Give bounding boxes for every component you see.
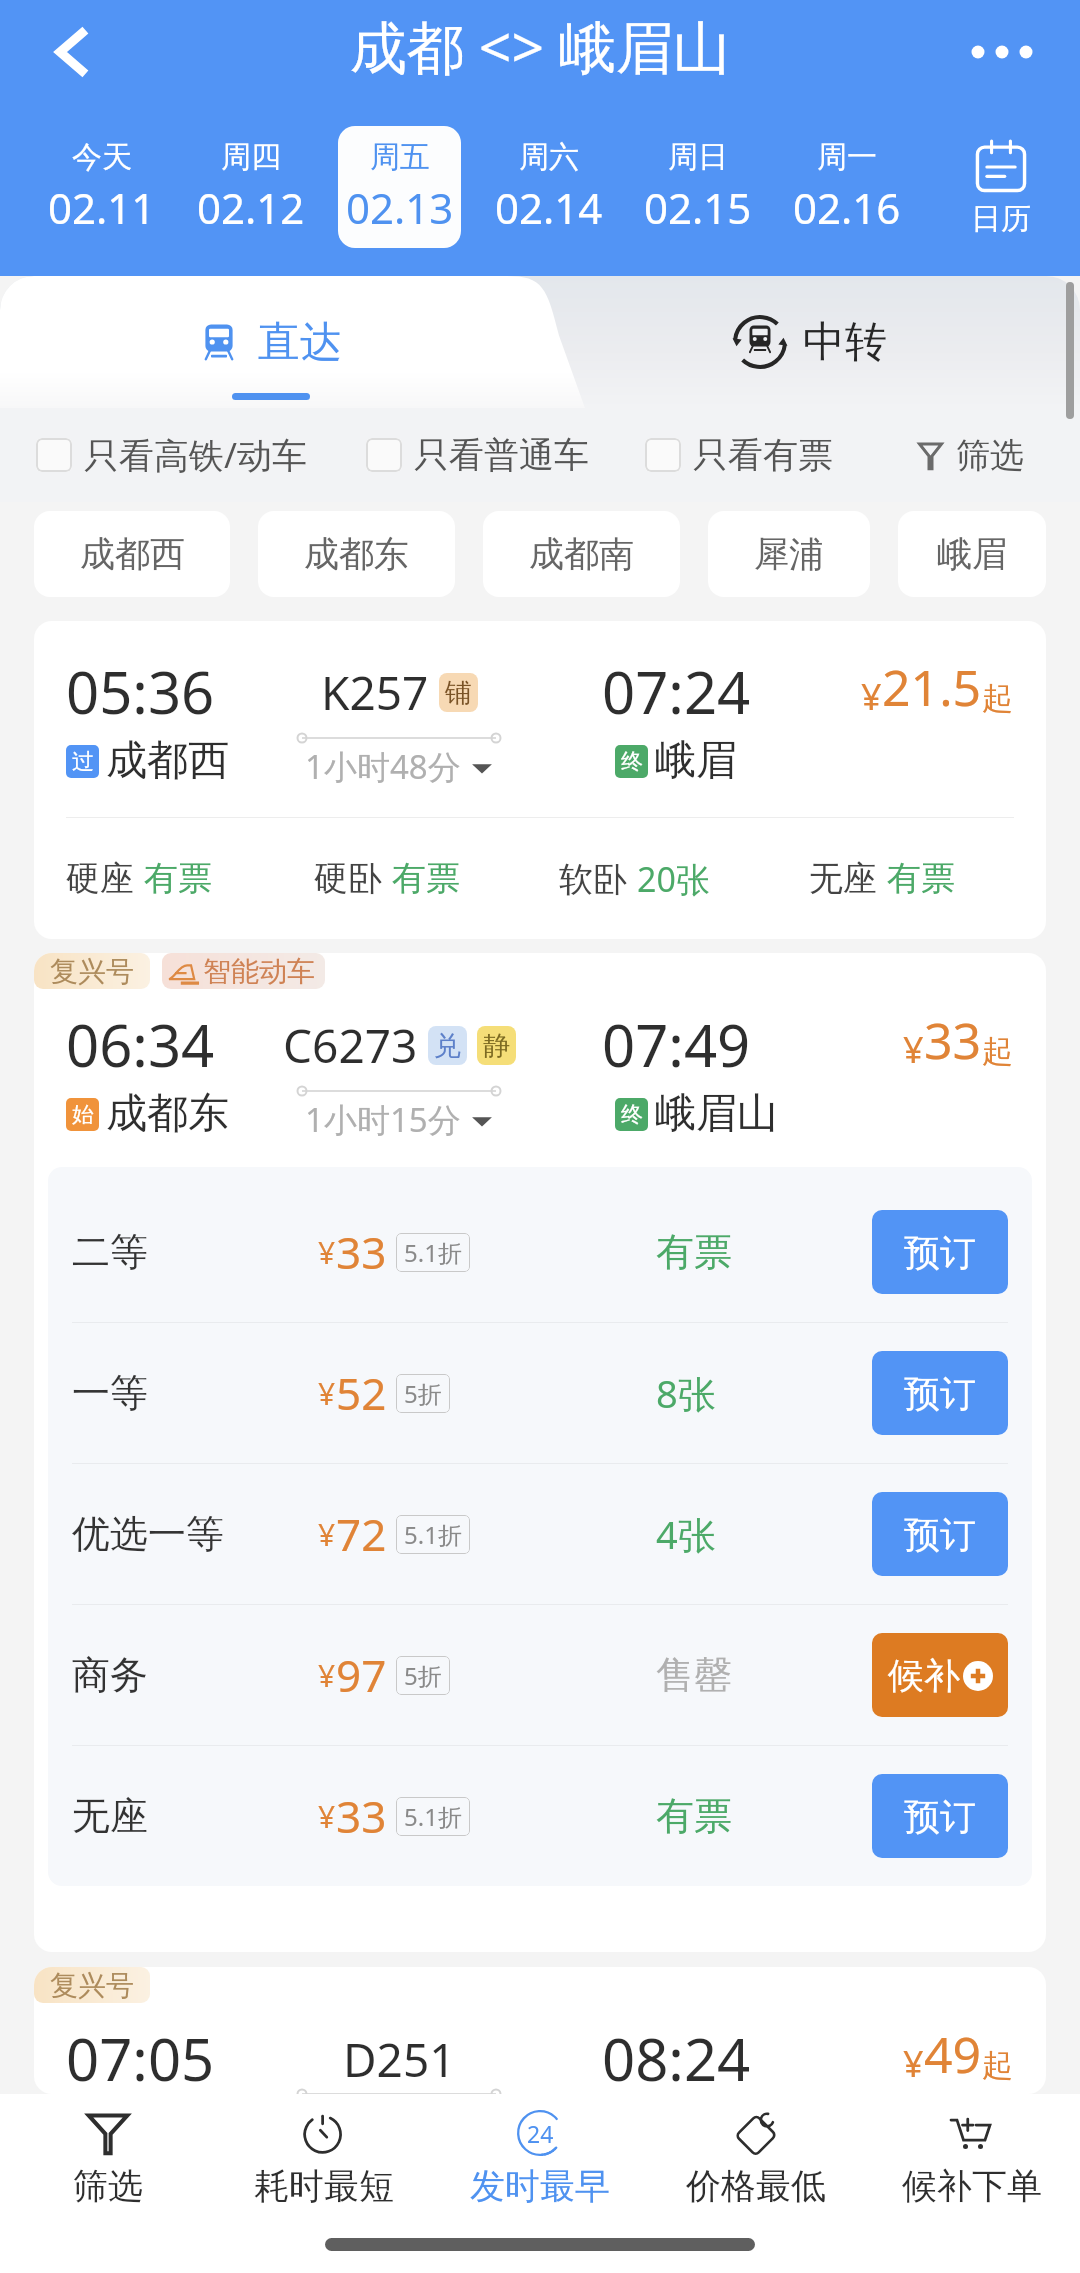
staticText: ¥	[318, 1373, 336, 1414]
staticText: 日历	[971, 200, 1031, 238]
button[interactable]: 24	[432, 2108, 648, 2218]
staticText: 07:49	[602, 1005, 751, 1084]
button[interactable]: 周日	[636, 126, 759, 248]
button[interactable]: 犀浦	[708, 511, 870, 597]
staticText: 复兴号	[50, 1968, 134, 2003]
staticText: 02.13	[346, 179, 454, 236]
staticText: 52	[336, 1363, 387, 1423]
button[interactable]: 预订	[872, 1351, 1008, 1435]
staticText: 成都西	[80, 532, 185, 576]
staticText: 33	[336, 1786, 387, 1846]
staticText: 4张	[656, 1508, 716, 1560]
button[interactable]: 只看普通车	[366, 433, 589, 477]
button[interactable]: 成都西	[34, 511, 230, 597]
button[interactable]: 成都南	[483, 511, 680, 597]
staticText: ¥	[861, 672, 882, 721]
button[interactable]: More options	[962, 12, 1042, 92]
staticText: 优选一等	[72, 1510, 224, 1558]
staticText: ¥	[318, 1796, 336, 1837]
staticText: 成都东	[106, 1088, 229, 1140]
button[interactable]: 预订	[872, 1774, 1008, 1858]
staticText: 预订	[904, 1371, 976, 1416]
button[interactable]: 候补	[872, 1633, 1008, 1717]
staticText: 今天	[72, 138, 132, 176]
staticText: 有票	[144, 857, 212, 900]
button[interactable]: 周六	[487, 126, 610, 248]
button[interactable]: 筛选	[0, 2108, 216, 2218]
button[interactable]: 二等	[48, 1182, 1032, 1322]
staticText: 8张	[656, 1367, 716, 1419]
staticText: 只看有票	[693, 433, 833, 477]
staticText: 价格最低	[686, 2164, 826, 2208]
staticText: 5折	[404, 1659, 442, 1692]
staticText: 预订	[904, 1512, 976, 1557]
staticText: 20张	[637, 856, 710, 902]
button[interactable]: Back	[30, 12, 110, 92]
staticText: 峨眉	[655, 735, 737, 787]
button[interactable]: 今天	[40, 126, 163, 248]
staticText: 08:24	[602, 2019, 751, 2094]
staticText: 05:36	[66, 652, 215, 731]
staticText: 终	[621, 748, 643, 776]
staticText: 5.1折	[404, 1518, 462, 1551]
button[interactable]: 价格最低	[648, 2108, 864, 2218]
button[interactable]: 一等	[48, 1323, 1032, 1463]
button[interactable]: 周一	[785, 126, 908, 248]
button[interactable]: 商务	[48, 1605, 1032, 1745]
button[interactable]: 优选一等	[48, 1464, 1032, 1604]
staticText: 静	[483, 1029, 510, 1063]
staticText: 周一	[817, 138, 877, 176]
button[interactable]: 周五	[338, 126, 461, 248]
staticText: 起	[982, 1032, 1013, 1071]
button[interactable]: 峨眉	[898, 511, 1046, 597]
staticText: 02.15	[644, 179, 752, 236]
button[interactable]: 只看有票	[645, 433, 833, 477]
staticText: 筛选	[956, 434, 1024, 477]
button[interactable]: 耗时最短	[216, 2108, 432, 2218]
staticText: D251	[343, 2028, 456, 2091]
staticText: 周六	[519, 138, 579, 176]
staticText: 发时最早	[470, 2164, 610, 2208]
button[interactable]: 预订	[872, 1492, 1008, 1576]
staticText: 起	[982, 2046, 1013, 2085]
staticText: 硬卧	[314, 857, 382, 900]
staticText: 无座	[72, 1792, 148, 1840]
button[interactable]: 直达	[0, 276, 540, 408]
staticText: 预订	[904, 1230, 976, 1275]
staticText: 兑	[434, 1029, 461, 1063]
staticText: 33	[924, 1006, 982, 1074]
staticText: 成都 <> 峨眉山	[350, 7, 730, 85]
staticText: 06:34	[66, 1005, 215, 1084]
button[interactable]: 中转	[540, 276, 1080, 408]
staticText: 硬座	[66, 857, 134, 900]
button[interactable]: 成都东	[258, 511, 455, 597]
staticText: 02.11	[48, 179, 156, 236]
staticText: 铺	[445, 676, 472, 710]
staticText: 二等	[72, 1228, 148, 1276]
staticText: ¥	[318, 1514, 336, 1555]
staticText: 筛选	[73, 2164, 143, 2208]
button[interactable]: 筛选	[918, 434, 1024, 477]
staticText: 中转	[803, 316, 887, 369]
staticText: 候补下单	[902, 2164, 1042, 2208]
staticText: 起	[982, 679, 1013, 718]
staticText: 耗时最短	[254, 2164, 394, 2208]
staticText: 软卧	[559, 858, 627, 901]
button[interactable]: 只看高铁/动车	[36, 431, 308, 479]
staticText: 成都南	[529, 532, 634, 576]
button[interactable]: 日历	[921, 126, 1080, 248]
staticText: ¥	[903, 2039, 924, 2088]
button[interactable]: 预订	[872, 1210, 1008, 1294]
staticText: 直达	[258, 316, 342, 369]
button[interactable]: 候补下单	[864, 2108, 1080, 2218]
staticText: 商务	[72, 1651, 148, 1699]
staticText: 只看高铁/动车	[84, 431, 308, 479]
staticText: 售罄	[656, 1651, 732, 1699]
staticText: 5.1折	[404, 1800, 462, 1833]
staticText: 一等	[72, 1369, 148, 1417]
button[interactable]: 05:36	[34, 621, 1046, 939]
staticText: 犀浦	[754, 532, 824, 576]
button[interactable]: 无座	[48, 1746, 1032, 1886]
button[interactable]: 周四	[189, 126, 312, 248]
staticText: 02.14	[495, 179, 603, 236]
